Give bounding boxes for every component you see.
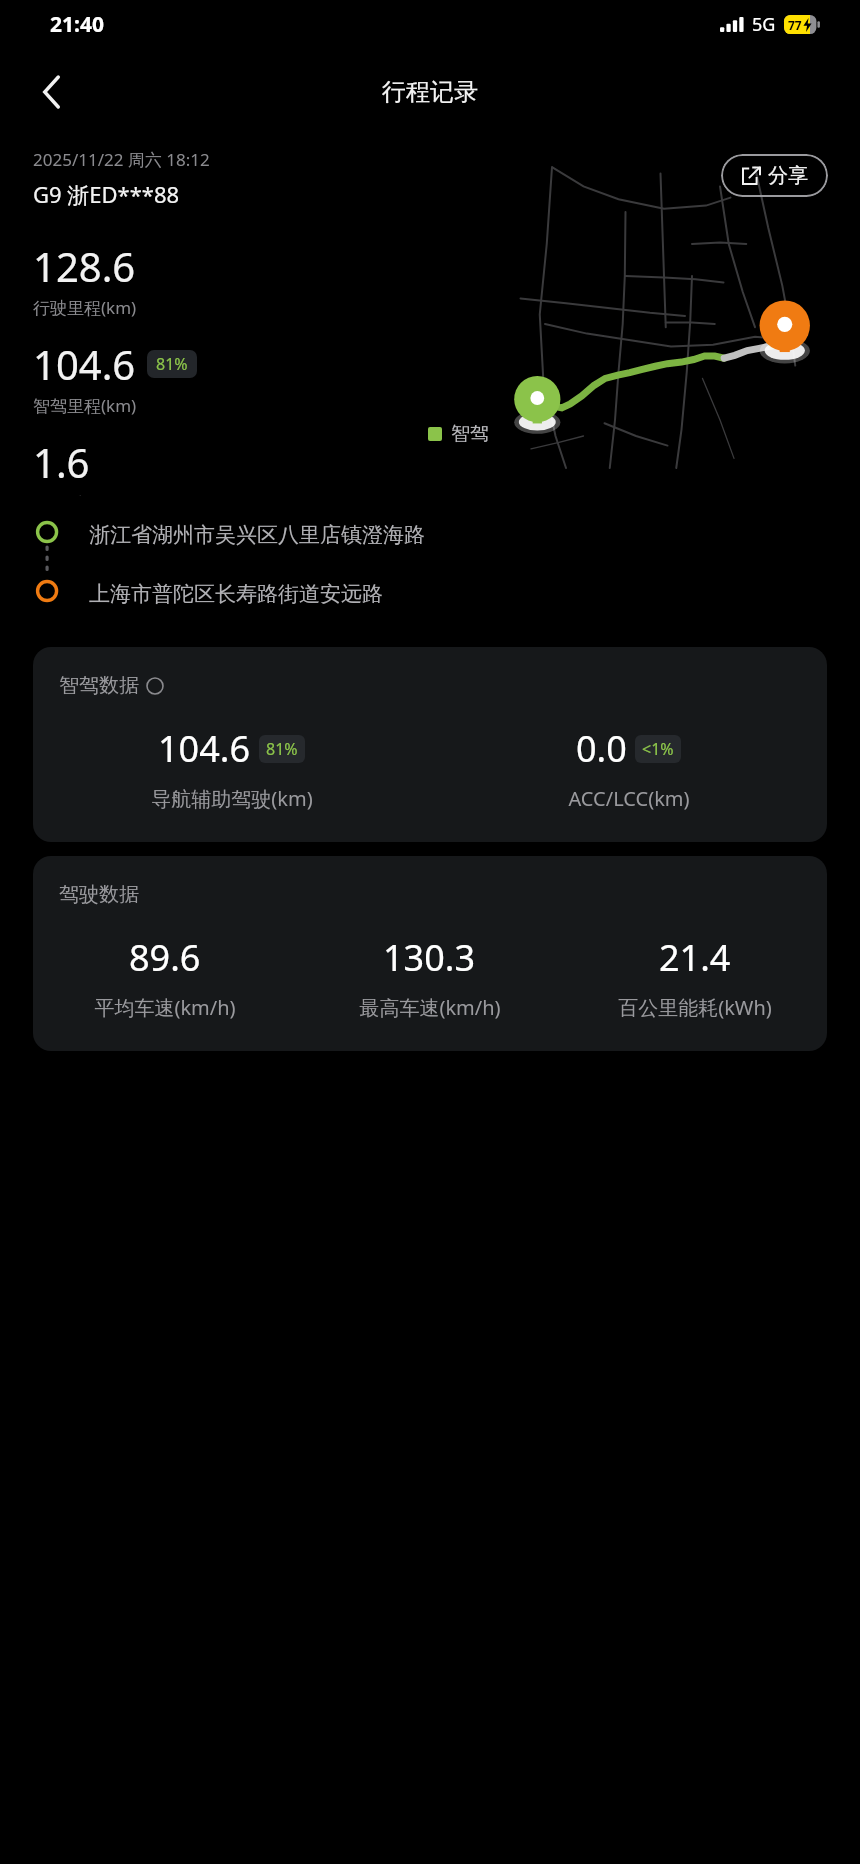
staticText: 1.6	[33, 435, 90, 489]
staticText: 5G	[752, 12, 776, 37]
button[interactable]: 驾驶数据	[33, 856, 827, 1051]
staticText: 行程记录	[382, 77, 478, 107]
button[interactable]: 分享	[721, 154, 828, 197]
staticText: 分享	[768, 163, 808, 188]
staticText: 平均车速(km/h)	[94, 994, 236, 1021]
staticText: G9 浙ED***88	[33, 179, 180, 209]
staticText: 128.6	[33, 239, 136, 293]
staticText: 导航辅助驾驶(km)	[151, 785, 313, 812]
staticText: 81%	[156, 353, 188, 375]
staticText: 智驾	[451, 422, 489, 446]
staticText: ACC/LCC(km)	[568, 785, 690, 812]
button[interactable]: 返回	[22, 63, 80, 121]
staticText: 81%	[266, 738, 298, 760]
staticText: 驾驶数据	[59, 882, 139, 907]
staticText: 21:40	[50, 10, 104, 39]
staticText: 2025/11/22 周六 18:12	[33, 148, 210, 171]
staticText: 浙江省湖州市吴兴区八里店镇澄海路	[89, 522, 425, 548]
staticText: 0.0	[576, 724, 627, 773]
staticText: 77	[788, 17, 802, 33]
staticText: 104.6	[158, 724, 251, 773]
staticText: 百公里能耗(kWh)	[618, 994, 772, 1021]
staticText: 89.6	[129, 933, 201, 982]
staticText: 上海市普陀区长寿路街道安远路	[89, 581, 383, 607]
staticText: 130.3	[383, 933, 476, 982]
staticText: 行驶里程(km)	[33, 296, 137, 319]
staticText: <1%	[642, 738, 674, 760]
staticText: 21.4	[659, 933, 731, 982]
staticText: 104.6	[33, 337, 136, 391]
staticText: 智驾数据	[59, 673, 139, 698]
staticText: 最高车速(km/h)	[359, 994, 501, 1021]
staticText: 智驾里程(km)	[33, 394, 137, 417]
button[interactable]: 智驾数据	[33, 647, 827, 842]
